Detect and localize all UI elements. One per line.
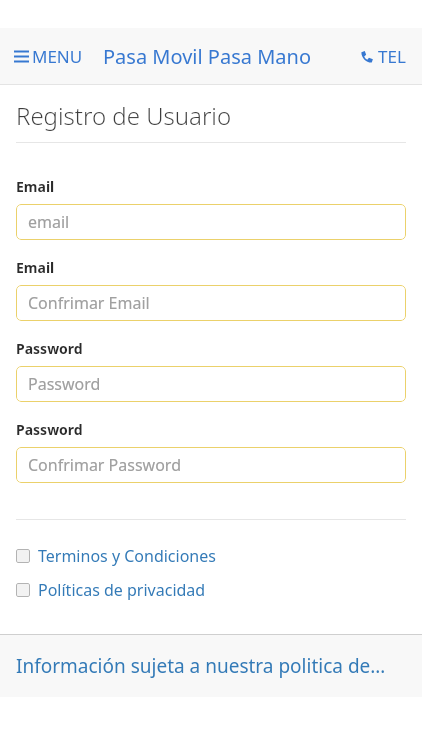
button[interactable]: Información sujeta a nuestra politica de… xyxy=(0,634,422,697)
button[interactable]: Checkbox Terminos y Condiciones xyxy=(0,542,422,570)
button[interactable]: TEL xyxy=(352,39,422,74)
staticText: Información sujeta a nuestra politica de… xyxy=(16,653,386,679)
button[interactable]: Confrimar Email xyxy=(16,285,406,321)
button[interactable]: Confrimar Password xyxy=(16,447,406,483)
staticText: email xyxy=(28,211,70,233)
button[interactable]: MENU xyxy=(0,39,91,74)
button[interactable]: Pasa Movil Pasa Mano xyxy=(103,37,311,76)
staticText: MENU xyxy=(32,45,83,68)
staticText: Confrimar Email xyxy=(28,292,150,314)
staticText: Políticas de privacidad xyxy=(38,579,206,601)
other: Checkbox Terminos y Condiciones xyxy=(16,549,30,563)
staticText: Email xyxy=(16,258,55,277)
staticText: Password xyxy=(16,420,83,439)
button[interactable]: email xyxy=(16,204,406,240)
button[interactable]: Password xyxy=(16,366,406,402)
staticText: Terminos y Condiciones xyxy=(38,545,216,567)
button[interactable]: Checkbox Políticas de privacidad xyxy=(0,576,422,604)
staticText: Password xyxy=(28,373,101,395)
staticText: Email xyxy=(16,177,55,196)
staticText: Confrimar Password xyxy=(28,454,181,476)
staticText: Password xyxy=(16,339,83,358)
staticText: Registro de Usuario xyxy=(16,99,232,132)
staticText: TEL xyxy=(378,45,406,68)
other: Checkbox Políticas de privacidad xyxy=(16,583,30,597)
